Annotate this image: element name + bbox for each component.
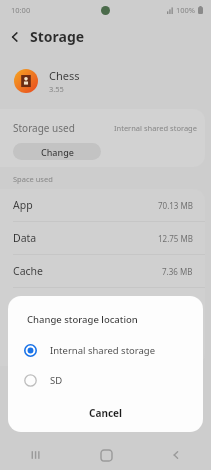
button[interactable]: Cancel — [8, 398, 203, 428]
staticText: Space used — [13, 174, 53, 184]
staticText: Cancel — [89, 406, 123, 420]
staticText: Internal shared storage — [50, 344, 156, 357]
staticText: Cache — [13, 264, 43, 278]
staticText: 3.55 — [49, 84, 64, 94]
button[interactable]: Home — [71, 440, 141, 470]
staticText: App — [13, 198, 33, 212]
button[interactable]: SD — [8, 368, 203, 392]
button[interactable]: App — [0, 189, 205, 221]
staticText: Chess — [49, 68, 80, 83]
button[interactable]: Internal shared storage — [8, 338, 203, 362]
button[interactable]: Change — [13, 143, 101, 160]
staticText: Internal shared storage — [114, 123, 197, 133]
button[interactable]: Recent apps — [0, 440, 71, 470]
staticText: 10:00 — [11, 5, 31, 15]
staticText: 12.75 MB — [158, 233, 193, 244]
staticText: SD — [50, 374, 63, 387]
button[interactable]: Clear data — [24, 366, 105, 377]
button[interactable]: Back — [141, 440, 211, 470]
staticText: 7.36 MB — [162, 266, 193, 277]
staticText: 70.13 MB — [158, 200, 193, 211]
button[interactable]: Back — [0, 22, 30, 52]
staticText: Data — [13, 231, 37, 245]
staticText: 100% — [176, 5, 196, 15]
staticText: Change — [41, 146, 74, 158]
button[interactable]: Data — [0, 222, 205, 254]
staticText: Storage — [30, 27, 85, 46]
staticText: Storage used — [13, 121, 75, 135]
staticText: Change storage location — [27, 313, 138, 326]
button[interactable]: Cache — [0, 255, 205, 287]
